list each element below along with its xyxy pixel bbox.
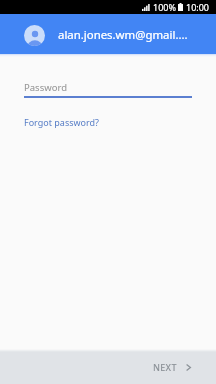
staticText: 10:00 [186,1,210,13]
staticText: Forgot password? [24,116,100,128]
button[interactable]: Password [24,81,192,98]
staticText: alan.jones.wm@gmail.... [58,27,188,43]
staticText: 100% [153,1,176,13]
staticText: NEXT [153,361,177,373]
other: Battery full [178,3,183,11]
button[interactable]: Account avatar [0,14,216,54]
other: Account avatar [24,25,45,46]
staticText: Password [24,81,67,94]
other: Mobile signal strength [142,4,150,11]
button[interactable]: NEXT [139,352,216,384]
button[interactable]: Forgot password? [24,116,100,128]
